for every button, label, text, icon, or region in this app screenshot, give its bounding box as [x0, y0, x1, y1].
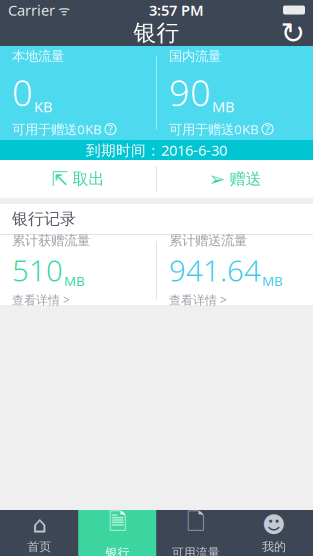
staticText: 🗋 [187, 506, 205, 543]
staticText: 累计赠送流量 [169, 232, 247, 249]
staticText: 我的 [262, 539, 286, 554]
staticText: ☻ [262, 512, 286, 537]
staticText: KB [34, 97, 53, 116]
staticText: ᯤ [55, 1, 70, 19]
staticText: 首页 [27, 539, 51, 554]
staticText: ⌂ [32, 512, 46, 537]
staticText: 国内流量 [169, 48, 221, 64]
staticText: ⇱ [51, 168, 68, 190]
staticText: 941.64 [169, 251, 261, 290]
staticText: ➢ [208, 168, 225, 190]
staticText: 🗎 [108, 506, 126, 543]
button[interactable]: ⇱ [0, 160, 156, 198]
staticText: ↻ [280, 16, 305, 50]
staticText: MB [212, 97, 235, 116]
staticText: 3:57 PM [149, 0, 204, 20]
staticText: MB [262, 272, 283, 290]
staticText: MB [64, 272, 85, 290]
button[interactable]: 查看详情 > [12, 292, 70, 308]
staticText: 可用于赠送0KB [169, 120, 259, 138]
button[interactable]: ☻ [235, 510, 313, 556]
staticText: 累计获赠流量 [12, 232, 90, 249]
button[interactable]: 说明 [262, 124, 273, 135]
button[interactable]: 查看详情 > [169, 292, 227, 308]
staticText: 取出 [72, 169, 104, 189]
staticText: Carrier [8, 0, 55, 20]
staticText: 0 [12, 68, 33, 116]
staticText: ? [108, 122, 113, 136]
staticText: 银行 [133, 19, 179, 47]
staticText: 银行 [105, 545, 129, 556]
staticText: 510 [12, 251, 63, 290]
button[interactable]: 🗋 [156, 510, 235, 556]
staticText: 可用流量 [172, 545, 220, 556]
button[interactable]: 🗎 [78, 510, 156, 556]
staticText: 可用于赠送0KB [12, 120, 102, 138]
button[interactable]: 说明 [105, 124, 116, 135]
staticText: 查看详情 > [12, 292, 70, 308]
staticText: 赠送 [229, 169, 261, 189]
staticText: ? [265, 122, 270, 136]
button[interactable]: ➢ [157, 160, 313, 198]
button[interactable]: ⌂ [0, 510, 78, 556]
staticText: 本地流量 [12, 48, 64, 64]
staticText: 银行记录 [12, 209, 76, 229]
button[interactable]: 刷新 [273, 20, 313, 46]
staticText: 到期时间：2016-6-30 [86, 140, 227, 160]
staticText: 90 [169, 68, 211, 116]
staticText: 查看详情 > [169, 292, 227, 308]
